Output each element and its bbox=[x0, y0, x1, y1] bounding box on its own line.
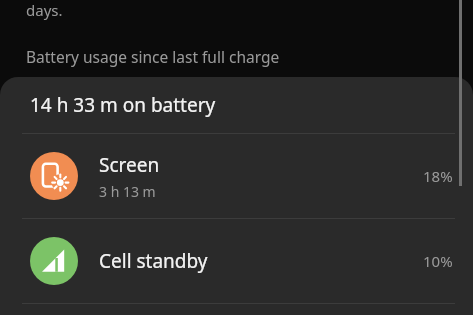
staticText: Screen bbox=[99, 152, 160, 178]
staticText: 14 h 33 m on battery bbox=[30, 92, 216, 118]
staticText: 10% bbox=[423, 251, 453, 271]
button[interactable]: Screen bbox=[0, 134, 473, 218]
staticText: 18% bbox=[423, 166, 453, 186]
button[interactable]: Cell standby bbox=[0, 219, 473, 303]
staticText: Battery usage since last full charge bbox=[26, 46, 280, 67]
staticText: days. bbox=[26, 0, 63, 20]
staticText: Cell standby bbox=[99, 248, 208, 274]
staticText: 3 h 13 m bbox=[99, 182, 156, 201]
other: Cell standby bbox=[30, 237, 78, 285]
other: Screen bbox=[30, 152, 78, 200]
